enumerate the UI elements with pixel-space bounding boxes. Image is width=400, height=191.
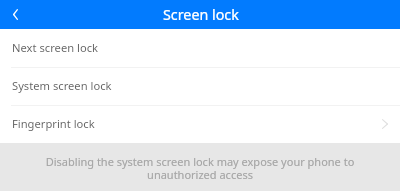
- button[interactable]: Fingerprint lock: [0, 105, 400, 143]
- button[interactable]: Next screen lock: [0, 29, 400, 67]
- staticText: Fingerprint lock: [12, 116, 95, 131]
- button[interactable]: Back: [0, 0, 29, 29]
- staticText: Next screen lock: [12, 40, 99, 55]
- staticText: Disabling the system screen lock may exp…: [40, 154, 360, 182]
- staticText: Screen lock: [163, 5, 239, 24]
- staticText: System screen lock: [12, 78, 112, 93]
- button[interactable]: System screen lock: [0, 67, 400, 105]
